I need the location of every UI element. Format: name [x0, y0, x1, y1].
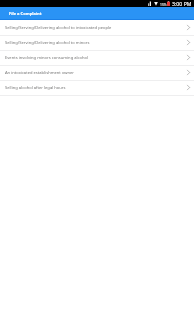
staticText: Selling/Serving/Delivering alcohol to in… [5, 25, 187, 31]
staticText: 15% [160, 2, 167, 6]
button[interactable]: Selling alcohol after legal hours [0, 81, 194, 96]
staticText: Selling/Serving/Delivering alcohol to mi… [5, 40, 187, 46]
button[interactable]: Events involving minors consuming alcoho… [0, 51, 194, 66]
staticText: File a Complaint [9, 11, 42, 17]
staticText: Selling alcohol after legal hours [5, 85, 187, 91]
staticText: 3:00 PM [172, 0, 192, 7]
button[interactable]: An intoxicated establishment owner [0, 66, 194, 81]
staticText: Events involving minors consuming alcoho… [5, 55, 187, 61]
staticText: An intoxicated establishment owner [5, 70, 187, 76]
button[interactable]: Selling/Serving/Delivering alcohol to mi… [0, 36, 194, 51]
button[interactable]: Selling/Serving/Delivering alcohol to in… [0, 21, 194, 36]
